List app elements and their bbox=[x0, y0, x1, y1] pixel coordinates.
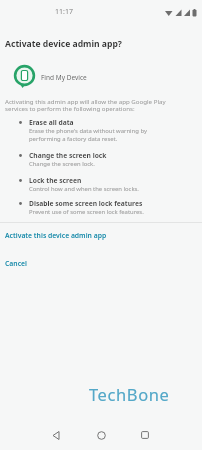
staticText: Find My Device bbox=[41, 73, 87, 82]
staticText: Prevent use of some screen lock features… bbox=[29, 208, 144, 216]
staticText: Activate this device admin app bbox=[5, 231, 107, 240]
staticText: Activate device admin app? bbox=[5, 38, 122, 50]
button[interactable]: Activate this device admin app bbox=[0, 226, 130, 244]
staticText: 11:17 bbox=[55, 7, 73, 17]
button[interactable] bbox=[38, 424, 74, 446]
staticText: Lock the screen bbox=[29, 176, 82, 185]
button[interactable]: Find My Device bbox=[13, 64, 103, 90]
staticText: Cancel bbox=[5, 259, 27, 268]
button[interactable] bbox=[83, 424, 119, 446]
staticText: Erase all data bbox=[29, 118, 74, 127]
staticText: TechBone bbox=[89, 383, 170, 405]
staticText: Change the screen lock bbox=[29, 151, 107, 160]
button[interactable]: Cancel bbox=[0, 254, 60, 272]
staticText: Erase the phone's data without warning b… bbox=[29, 127, 147, 143]
staticText: Control how and when the screen locks. bbox=[29, 185, 139, 193]
staticText: Disable some screen lock features bbox=[29, 199, 143, 208]
staticText: Activating this admin app will allow the… bbox=[5, 97, 166, 113]
staticText: Change the screen lock. bbox=[29, 160, 95, 168]
button[interactable] bbox=[127, 424, 163, 446]
